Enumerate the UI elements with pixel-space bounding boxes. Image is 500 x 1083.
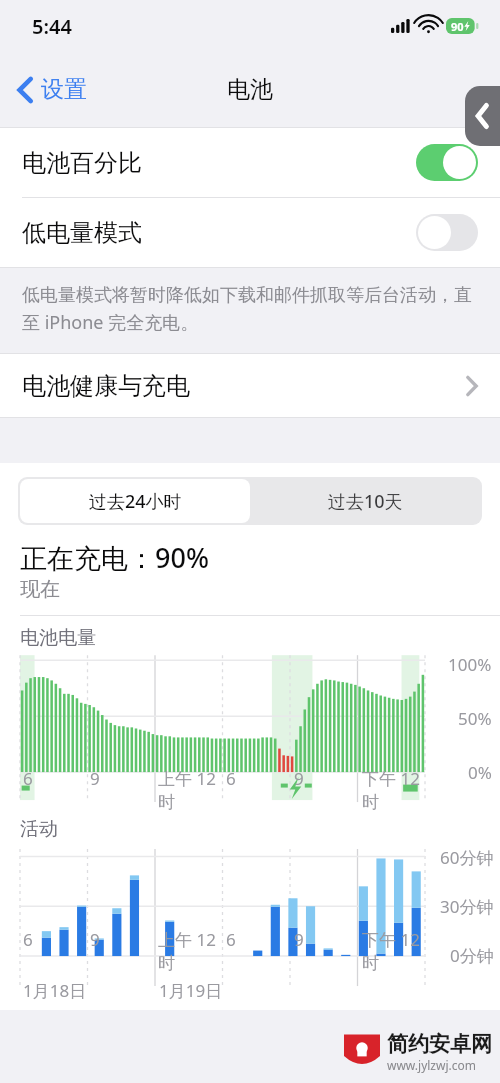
staticText: 电池电量: [20, 626, 96, 650]
staticText: 过去24小时: [89, 489, 182, 514]
staticText: 1月18日: [23, 979, 87, 1002]
button[interactable]: 电池百分比: [416, 144, 478, 181]
button[interactable]: 低电量模式: [0, 198, 500, 267]
staticText: 6: [23, 928, 33, 951]
staticText: 低电量模式将暂时降低如下载和邮件抓取等后台活动，直至 iPhone 完全充电。: [22, 284, 480, 335]
staticText: 设置: [41, 75, 87, 104]
staticText: 0分钟: [450, 944, 494, 967]
button[interactable]: 过去10天: [250, 479, 480, 523]
button[interactable]: 低电量模式: [416, 214, 478, 251]
staticText: 电池: [227, 75, 273, 104]
staticText: 活动: [20, 817, 58, 841]
staticText: 9: [90, 928, 100, 951]
staticText: 6: [23, 767, 33, 790]
staticText: 60分钟: [440, 846, 494, 869]
staticText: 下午 12时: [362, 928, 430, 974]
staticText: 0%: [468, 761, 492, 784]
staticText: 电池健康与充电: [22, 371, 190, 401]
staticText: 下午 12时: [362, 767, 430, 813]
staticText: 正在充电：90%: [20, 539, 209, 576]
staticText: 上午 12时: [158, 767, 226, 813]
staticText: 简约安卓网: [387, 1031, 492, 1057]
staticText: 5:44: [32, 13, 72, 40]
staticText: 1月19日: [159, 979, 223, 1002]
staticText: 90: [451, 19, 464, 34]
staticText: 低电量模式: [22, 218, 142, 248]
staticText: 50%: [458, 707, 492, 730]
staticText: www.jylzwj.com: [387, 1057, 476, 1073]
staticText: 9: [294, 767, 304, 790]
staticText: 9: [294, 928, 304, 951]
button[interactable]: 过去24小时: [20, 479, 250, 523]
button[interactable]: 电池百分比: [0, 128, 500, 197]
staticText: 9: [90, 767, 100, 790]
staticText: 6: [226, 767, 236, 790]
staticText: 100%: [448, 653, 492, 676]
staticText: 6: [226, 928, 236, 951]
staticText: 30分钟: [440, 895, 494, 918]
staticText: 过去10天: [328, 489, 403, 514]
staticText: 电池百分比: [22, 148, 142, 178]
staticText: 上午 12时: [158, 928, 226, 974]
button[interactable]: 设置: [12, 67, 93, 112]
button[interactable]: 返回: [465, 86, 500, 146]
button[interactable]: 电池健康与充电: [0, 354, 500, 417]
staticText: 现在: [20, 577, 60, 602]
